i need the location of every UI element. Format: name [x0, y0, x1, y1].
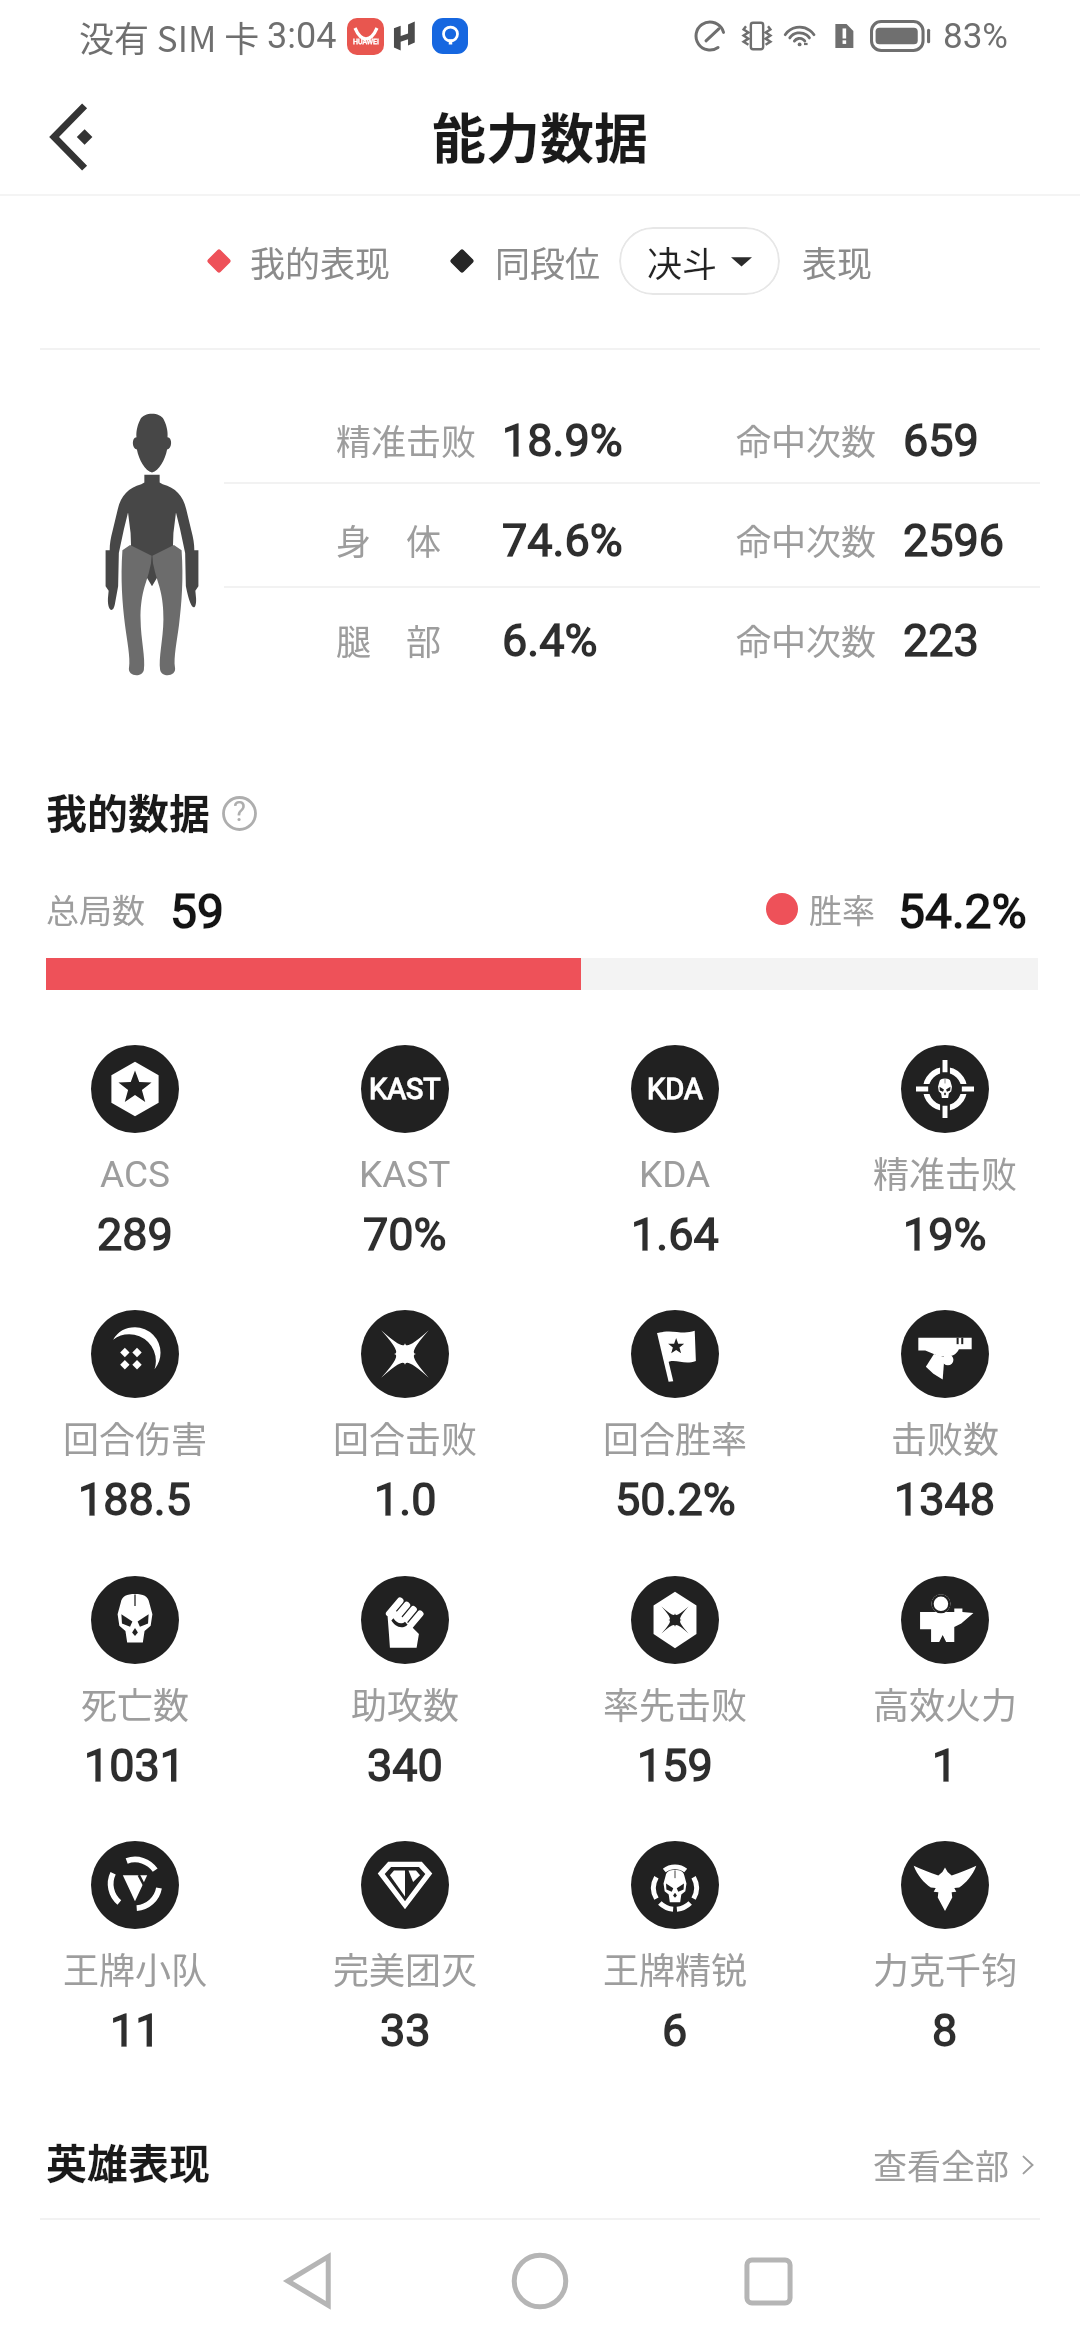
staticText: 11 — [110, 2004, 161, 2057]
staticText: 54.2% — [898, 883, 1027, 939]
button[interactable]: 回合击败 — [270, 1304, 540, 1522]
staticText: HUAWEI — [353, 38, 379, 46]
staticText: 回合胜率 — [603, 1411, 748, 1463]
staticText: 助攻数 — [351, 1677, 460, 1729]
staticText: 命中次数 — [736, 514, 877, 565]
staticText: 回合伤害 — [63, 1411, 208, 1463]
button[interactable]: KDA — [540, 1039, 810, 1257]
staticText: 我的表现 — [250, 236, 391, 287]
staticText: 率先击败 — [603, 1677, 748, 1729]
staticText: 精准击败 — [873, 1146, 1018, 1198]
button[interactable]: 率先击败 — [540, 1570, 810, 1788]
staticText: 表现 — [802, 236, 873, 287]
button[interactable]: 回合胜率 — [540, 1304, 810, 1522]
staticText: 1 — [932, 1739, 958, 1792]
staticText: 决斗 — [647, 236, 718, 287]
staticText: 没有 SIM 卡 — [79, 11, 260, 62]
staticText: 我的数据 — [46, 781, 210, 840]
button[interactable]: Back — [240, 2222, 376, 2340]
staticText: 18.9% — [502, 414, 623, 467]
staticText: 70% — [363, 1208, 447, 1261]
staticText: 159 — [637, 1739, 713, 1792]
staticText: 188.5 — [78, 1473, 192, 1526]
staticText: 340 — [367, 1739, 443, 1792]
staticText: KAST — [359, 1153, 451, 1196]
staticText: 33 — [380, 2004, 431, 2057]
staticText: 83% — [943, 16, 1008, 57]
button[interactable]: Back — [31, 93, 127, 181]
staticText: 命中次数 — [736, 614, 877, 665]
staticText: 力克千钧 — [873, 1942, 1018, 1994]
staticText: 英雄表现 — [46, 2131, 210, 2190]
button[interactable]: ACS — [0, 1039, 270, 1257]
button[interactable]: 助攻数 — [270, 1570, 540, 1788]
staticText: 命中次数 — [736, 414, 877, 465]
staticText: 精准击败 — [336, 414, 477, 465]
staticText: ? — [233, 796, 246, 828]
staticText: 腿 部 — [336, 614, 442, 665]
button[interactable]: KAST — [270, 1039, 540, 1257]
staticText: 王牌小队 — [63, 1942, 208, 1994]
staticText: 74.6% — [502, 514, 623, 567]
button[interactable]: Home — [472, 2222, 608, 2340]
button[interactable]: 回合伤害 — [0, 1304, 270, 1522]
button[interactable]: 击败数 — [810, 1304, 1080, 1522]
button[interactable]: 决斗 — [619, 227, 780, 295]
button[interactable]: 王牌精锐 — [540, 1835, 810, 2053]
staticText: 8 — [932, 2004, 958, 2057]
staticText: 王牌精锐 — [603, 1942, 748, 1994]
button[interactable]: 死亡数 — [0, 1570, 270, 1788]
staticText: 击败数 — [891, 1411, 1000, 1463]
staticText: 1348 — [894, 1473, 996, 1526]
staticText: 59 — [170, 883, 224, 939]
staticText: 身 体 — [336, 514, 442, 565]
staticText: 总局数 — [46, 885, 145, 933]
button[interactable]: 查看全部 — [873, 2140, 1042, 2189]
staticText: 高效火力 — [873, 1677, 1018, 1729]
staticText: 2596 — [903, 514, 1005, 567]
staticText: KDA — [647, 1072, 703, 1106]
staticText: 19% — [903, 1208, 987, 1261]
button[interactable]: 完美团灭 — [270, 1835, 540, 2053]
staticText: 50.2% — [615, 1473, 736, 1526]
button[interactable]: 高效火力 — [810, 1570, 1080, 1788]
staticText: 3:04 — [267, 15, 337, 57]
staticText: 1.0 — [374, 1473, 437, 1526]
staticText: 6.4% — [502, 614, 598, 667]
staticText: ACS — [100, 1153, 170, 1196]
button[interactable]: 精准击败 — [810, 1039, 1080, 1257]
button[interactable]: Recents — [700, 2222, 836, 2340]
staticText: KAST — [369, 1072, 441, 1106]
staticText: 能力数据 — [432, 96, 648, 174]
staticText: 回合击败 — [333, 1411, 478, 1463]
staticText: 289 — [97, 1208, 173, 1261]
staticText: 死亡数 — [81, 1677, 190, 1729]
staticText: 6 — [662, 2004, 688, 2057]
staticText: 查看全部 — [873, 2140, 1009, 2189]
staticText: 1.64 — [631, 1208, 719, 1261]
staticText: 659 — [903, 414, 979, 467]
staticText: 胜率 — [809, 885, 875, 933]
staticText: 同段位 — [495, 236, 601, 287]
button[interactable]: Help — [218, 792, 260, 834]
staticText: 1031 — [84, 1739, 186, 1792]
button[interactable]: 力克千钧 — [810, 1835, 1080, 2053]
staticText: 223 — [903, 614, 979, 667]
button[interactable]: 王牌小队 — [0, 1835, 270, 2053]
staticText: 完美团灭 — [333, 1942, 478, 1994]
staticText: KDA — [639, 1153, 711, 1196]
